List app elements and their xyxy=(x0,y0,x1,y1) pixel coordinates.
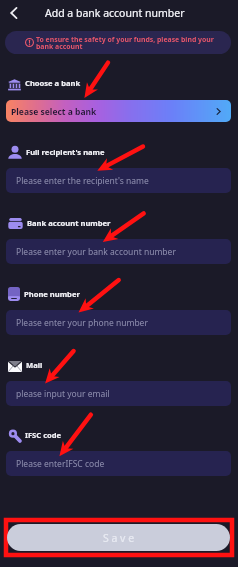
button[interactable]: Please enter your bank account number xyxy=(6,239,231,264)
staticText: Please enter your phone number xyxy=(16,317,148,329)
staticText: please input your email xyxy=(16,388,110,400)
button[interactable]: Please enter the recipient's name xyxy=(6,168,231,193)
button[interactable]: Back xyxy=(2,1,26,25)
staticText: Please enter your bank account number xyxy=(16,246,176,258)
button[interactable]: Please enterIFSC code xyxy=(6,451,231,476)
staticText: Please enterIFSC code xyxy=(16,458,105,470)
staticText: Choose a bank xyxy=(25,78,81,88)
staticText: Add a bank account number xyxy=(45,6,185,20)
staticText: Phone number xyxy=(24,289,80,299)
staticText: Please select a bank xyxy=(11,106,97,118)
staticText: S a v e xyxy=(103,531,135,545)
staticText: Please enter the recipient's name xyxy=(16,175,149,187)
staticText: To ensure the safety of your funds, plea… xyxy=(36,35,214,51)
button[interactable]: Please select a bank xyxy=(6,100,231,122)
button[interactable]: S a v e xyxy=(7,524,230,551)
staticText: Full recipient's name xyxy=(26,147,105,157)
staticText: IFSC code xyxy=(25,430,62,440)
staticText: Mail xyxy=(26,360,43,370)
button[interactable]: please input your email xyxy=(6,381,231,406)
button[interactable]: Please enter your phone number xyxy=(6,310,231,335)
staticText: Bank account number xyxy=(27,218,111,228)
